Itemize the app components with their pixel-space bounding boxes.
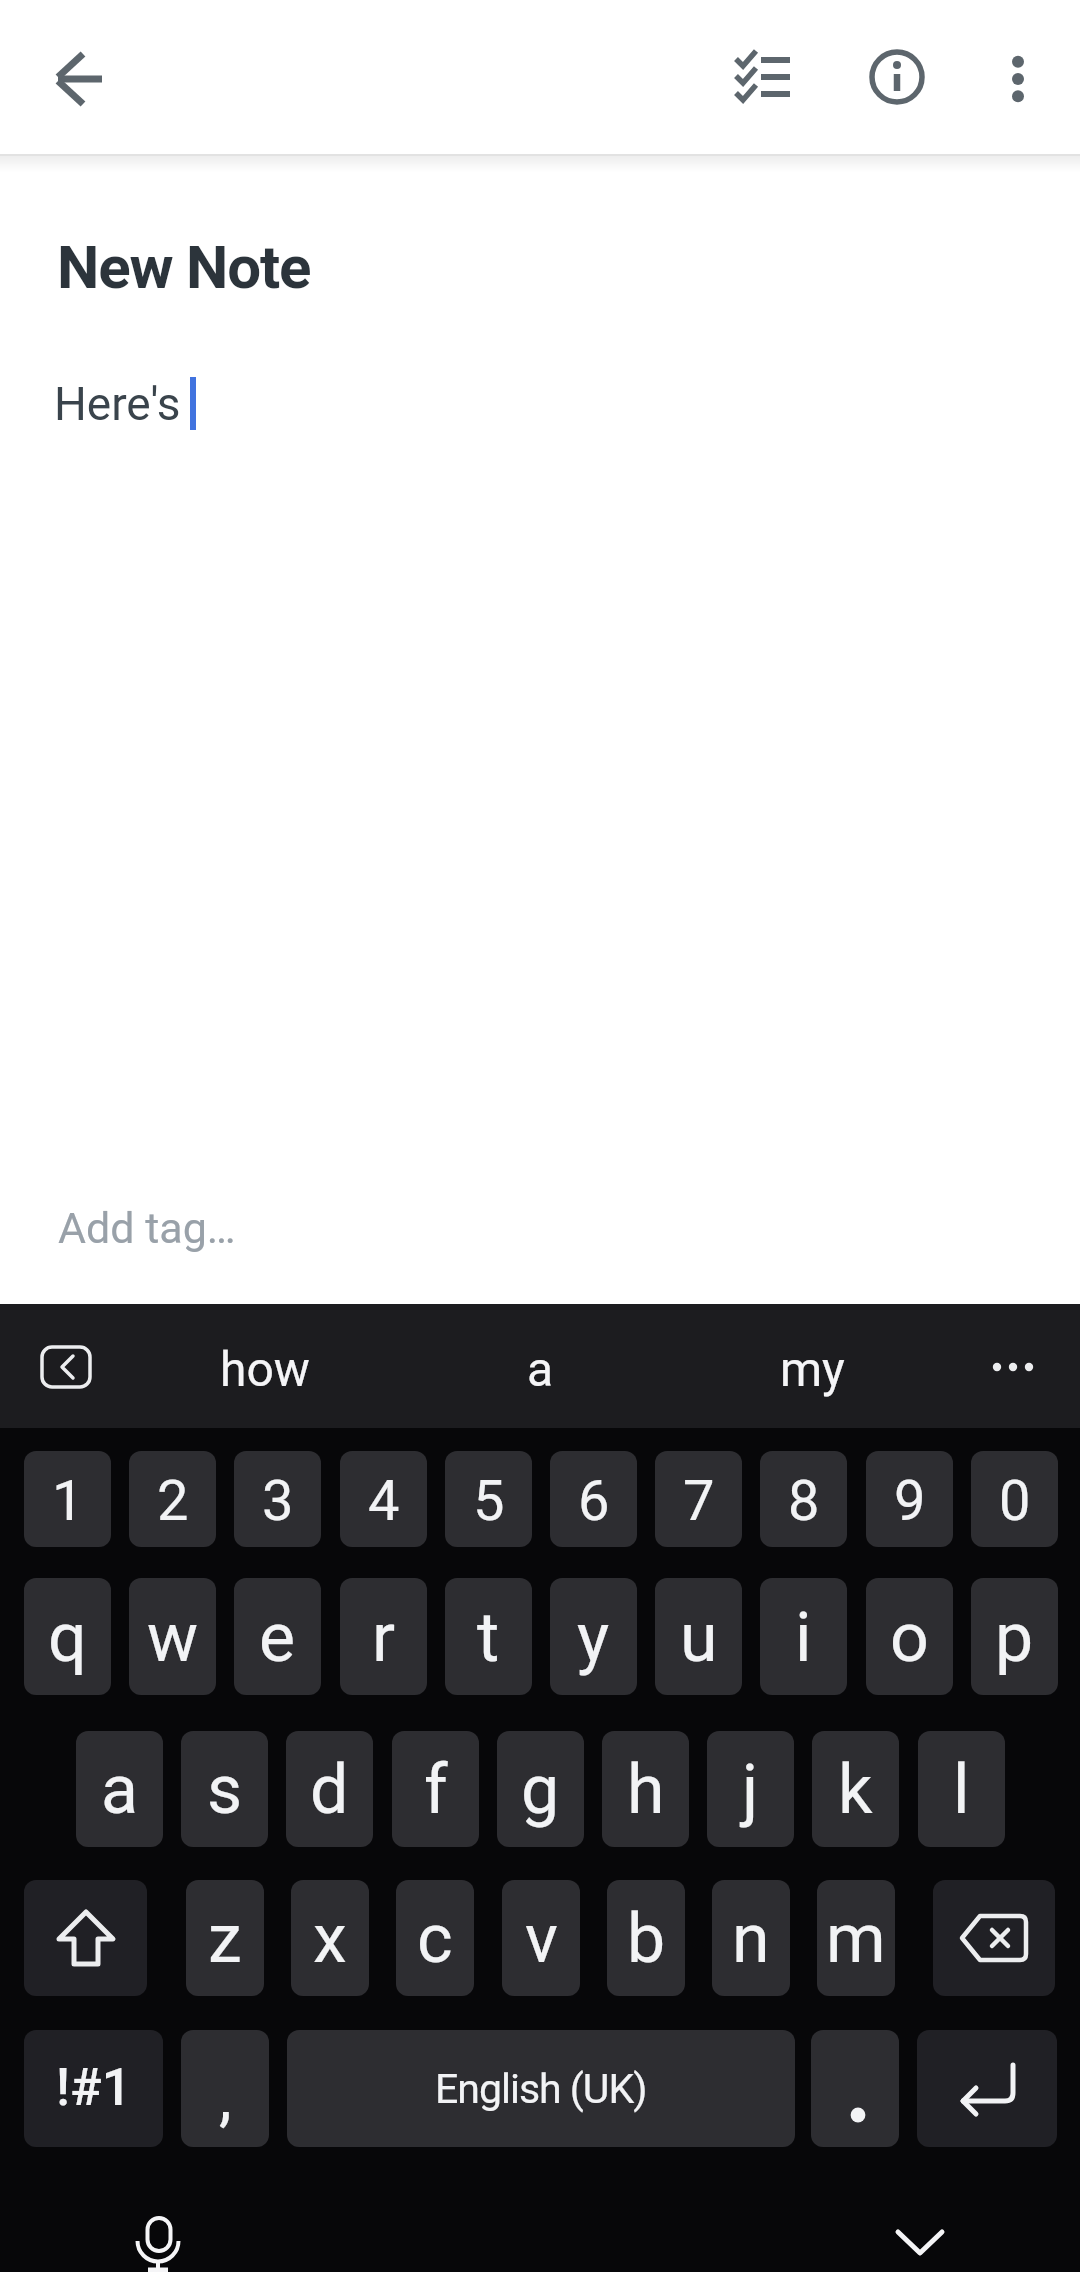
staticText: p: [995, 1598, 1034, 1678]
staticText: r: [372, 1598, 396, 1678]
staticText: z: [208, 1899, 242, 1979]
button[interactable]: how: [185, 1304, 345, 1428]
button[interactable]: v: [502, 1880, 580, 1996]
button[interactable]: t: [445, 1578, 532, 1695]
button[interactable]: f: [392, 1731, 479, 1847]
button[interactable]: p: [971, 1578, 1058, 1695]
button[interactable]: 5: [445, 1451, 532, 1547]
button[interactable]: q: [24, 1578, 111, 1695]
button[interactable]: c: [396, 1880, 474, 1996]
staticText: 6: [578, 1468, 610, 1534]
button[interactable]: s: [181, 1731, 268, 1847]
staticText: how: [220, 1341, 310, 1397]
staticText: l: [953, 1750, 970, 1830]
button[interactable]: u: [655, 1578, 742, 1695]
staticText: 1: [52, 1468, 84, 1534]
button[interactable]: z: [186, 1880, 264, 1996]
staticText: e: [259, 1598, 296, 1678]
button[interactable]: [24, 1880, 147, 1996]
button[interactable]: 2: [129, 1451, 216, 1547]
button[interactable]: o: [866, 1578, 953, 1695]
staticText: 0: [999, 1468, 1031, 1534]
staticText: f: [424, 1750, 448, 1830]
staticText: 2: [157, 1468, 189, 1534]
button[interactable]: my: [732, 1304, 892, 1428]
staticText: English (UK): [435, 2065, 647, 2113]
staticText: my: [780, 1341, 845, 1397]
button[interactable]: [917, 2030, 1057, 2147]
button[interactable]: d: [286, 1731, 373, 1847]
staticText: w: [147, 1598, 199, 1678]
staticText: ,: [219, 2060, 232, 2135]
button[interactable]: n: [712, 1880, 790, 1996]
button[interactable]: 4: [340, 1451, 427, 1547]
staticText: 9: [894, 1468, 926, 1534]
button[interactable]: h: [602, 1731, 689, 1847]
staticText: o: [890, 1598, 929, 1678]
button[interactable]: 0: [971, 1451, 1058, 1547]
staticText: 3: [262, 1468, 294, 1534]
staticText: Here's: [54, 377, 181, 431]
staticText: n: [732, 1899, 770, 1979]
button[interactable]: l: [918, 1731, 1005, 1847]
button[interactable]: x: [291, 1880, 369, 1996]
staticText: d: [310, 1750, 349, 1830]
button[interactable]: 1: [24, 1451, 111, 1547]
staticText: b: [627, 1899, 666, 1979]
button[interactable]: !#1: [24, 2030, 163, 2147]
staticText: 5: [473, 1468, 505, 1534]
button[interactable]: a: [460, 1304, 620, 1428]
button[interactable]: 6: [550, 1451, 637, 1547]
staticText: x: [313, 1899, 347, 1979]
staticText: New Note: [57, 232, 311, 302]
button[interactable]: [981, 41, 1053, 113]
button[interactable]: 8: [760, 1451, 847, 1547]
staticText: m: [826, 1899, 886, 1979]
staticText: !#1: [56, 2057, 132, 2118]
button[interactable]: ,: [181, 2030, 269, 2147]
button[interactable]: 7: [655, 1451, 742, 1547]
staticText: 4: [368, 1468, 400, 1534]
staticText: 8: [788, 1468, 820, 1534]
button[interactable]: k: [812, 1731, 899, 1847]
button[interactable]: w: [129, 1578, 216, 1695]
staticText: j: [742, 1750, 759, 1830]
button[interactable]: English (UK): [287, 2030, 795, 2147]
staticText: h: [627, 1750, 665, 1830]
button[interactable]: [34, 1339, 98, 1395]
button[interactable]: j: [707, 1731, 794, 1847]
button[interactable]: [44, 42, 116, 114]
staticText: c: [417, 1899, 453, 1979]
button[interactable]: [861, 41, 933, 113]
staticText: i: [795, 1598, 812, 1678]
staticText: k: [838, 1750, 873, 1830]
button[interactable]: a: [76, 1731, 163, 1847]
staticText: q: [48, 1598, 87, 1678]
button[interactable]: b: [607, 1880, 685, 1996]
staticText: 7: [683, 1468, 715, 1534]
button[interactable]: r: [340, 1578, 427, 1695]
button[interactable]: e: [234, 1578, 321, 1695]
button[interactable]: Add tag…: [58, 1203, 236, 1253]
staticText: a: [101, 1750, 138, 1830]
staticText: s: [207, 1750, 243, 1830]
button[interactable]: g: [497, 1731, 584, 1847]
button[interactable]: [981, 1331, 1053, 1403]
staticText: t: [477, 1598, 500, 1678]
button[interactable]: i: [760, 1578, 847, 1695]
staticText: g: [521, 1750, 560, 1830]
staticText: v: [525, 1899, 558, 1979]
button[interactable]: [121, 2204, 193, 2272]
staticText: y: [577, 1598, 610, 1678]
button[interactable]: [811, 2030, 899, 2147]
button[interactable]: [726, 41, 798, 113]
button[interactable]: [933, 1880, 1055, 1996]
staticText: u: [680, 1598, 718, 1678]
button[interactable]: 3: [234, 1451, 321, 1547]
button[interactable]: m: [817, 1880, 895, 1996]
button[interactable]: [884, 2207, 956, 2272]
button[interactable]: 9: [866, 1451, 953, 1547]
button[interactable]: y: [550, 1578, 637, 1695]
staticText: a: [527, 1341, 554, 1397]
staticText: Add tag…: [58, 1203, 236, 1253]
